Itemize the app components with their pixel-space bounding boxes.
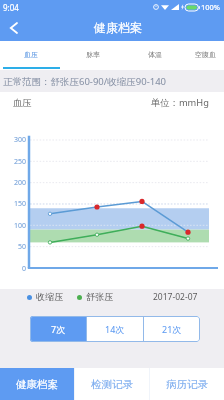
staticText: 收缩压 <box>36 291 64 303</box>
staticText: 150 <box>13 199 26 209</box>
staticText: 14次 <box>105 323 125 335</box>
button[interactable]: 健康档案 <box>0 368 74 400</box>
staticText: 健康档案 <box>16 378 58 391</box>
staticText: 100 <box>13 221 26 231</box>
staticText: 病历记录 <box>166 378 208 391</box>
button[interactable]: 脉率 <box>62 41 124 67</box>
staticText: 50 <box>17 242 26 252</box>
button[interactable]: Back <box>0 15 26 41</box>
staticText: 300 <box>13 135 26 145</box>
button[interactable]: 21次 <box>144 316 200 342</box>
staticText: 舒张压 <box>86 291 114 303</box>
button[interactable]: 血压 <box>0 41 62 67</box>
staticText: 9:04 <box>3 2 19 13</box>
staticText: 检测记录 <box>91 378 133 391</box>
button[interactable]: 检测记录 <box>75 368 149 400</box>
staticText: 200 <box>13 178 26 188</box>
button[interactable]: 病历记录 <box>150 368 224 400</box>
staticText: 正常范围：舒张压60-90/收缩压90-140 <box>3 75 167 88</box>
button[interactable]: 7次 <box>30 316 86 342</box>
staticText: 血压 <box>24 50 38 59</box>
staticText: 体温 <box>148 50 162 59</box>
button[interactable]: 14次 <box>87 316 143 342</box>
staticText: 7次 <box>51 323 66 335</box>
staticText: 0 <box>21 264 26 274</box>
staticText: 单位：mmHg <box>151 96 209 109</box>
staticText: 脉率 <box>86 50 100 59</box>
button[interactable]: 体温 <box>124 41 186 67</box>
staticText: 100% <box>201 2 221 12</box>
staticText: 空腹血 <box>195 50 216 59</box>
staticText: 健康档案 <box>94 20 142 35</box>
staticText: 21次 <box>162 323 182 335</box>
staticText: 2017-02-07 <box>153 291 198 303</box>
staticText: 血压 <box>13 97 32 109</box>
button[interactable]: 空腹血 <box>186 41 224 67</box>
staticText: 250 <box>13 157 26 167</box>
